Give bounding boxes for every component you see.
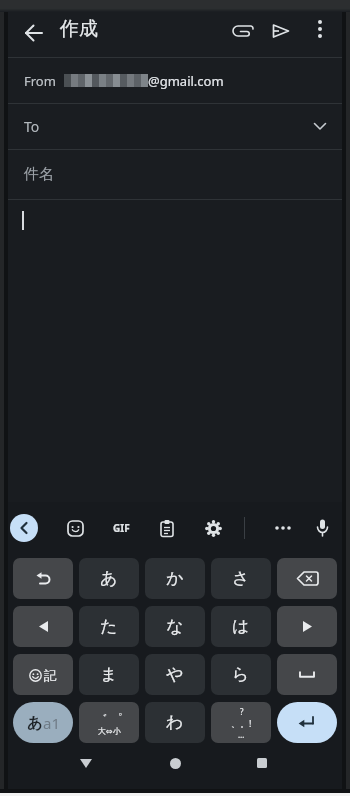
button[interactable]: [277, 702, 337, 743]
staticText: 作成: [60, 17, 98, 41]
staticText: ?: [240, 706, 244, 717]
staticText: @gmail.com: [148, 72, 224, 90]
button[interactable]: わ: [145, 702, 205, 743]
button[interactable]: [10, 514, 38, 542]
staticText: わ: [166, 712, 184, 733]
button[interactable]: [306, 15, 334, 43]
button[interactable]: [61, 514, 89, 542]
button[interactable]: さ: [211, 558, 271, 599]
staticText: さ: [232, 568, 250, 589]
staticText: あ: [100, 568, 118, 589]
staticText: 件名: [24, 165, 54, 184]
button[interactable]: は: [211, 606, 271, 647]
button[interactable]: [199, 514, 227, 542]
button[interactable]: た: [79, 606, 139, 647]
staticText: た: [100, 616, 118, 637]
button[interactable]: 件名: [8, 150, 342, 199]
button[interactable]: [16, 15, 52, 51]
staticText: や: [166, 664, 184, 685]
button[interactable]: [13, 558, 73, 599]
staticText: From: [24, 72, 56, 90]
staticText: GIF: [113, 521, 130, 535]
staticText: …: [238, 729, 245, 740]
button[interactable]: あ: [13, 702, 73, 743]
button[interactable]: [227, 15, 259, 47]
button[interactable]: ま: [79, 654, 139, 695]
button[interactable]: か: [145, 558, 205, 599]
staticText: あ: [27, 714, 43, 733]
staticText: ま: [100, 664, 118, 685]
staticText: 記: [44, 667, 57, 683]
button[interactable]: [277, 606, 337, 647]
staticText: 大⇔小: [98, 726, 121, 736]
button[interactable]: ゛ ゜: [79, 702, 139, 743]
staticText: a1: [43, 713, 60, 733]
button[interactable]: ら: [211, 654, 271, 695]
button[interactable]: From: [8, 58, 342, 103]
button[interactable]: [13, 606, 73, 647]
staticText: な: [166, 616, 184, 637]
button[interactable]: [269, 514, 297, 542]
staticText: は: [232, 616, 250, 637]
button[interactable]: [159, 747, 191, 779]
button[interactable]: [308, 514, 336, 542]
staticText: 、。!: [231, 717, 252, 729]
button[interactable]: GIF: [107, 514, 135, 542]
staticText: ら: [232, 664, 250, 685]
button[interactable]: [8, 200, 342, 502]
button[interactable]: や: [145, 654, 205, 695]
button[interactable]: な: [145, 606, 205, 647]
button[interactable]: [246, 747, 278, 779]
button[interactable]: [153, 514, 181, 542]
button[interactable]: [70, 747, 102, 779]
button[interactable]: ?: [211, 702, 271, 743]
button[interactable]: あ: [79, 558, 139, 599]
button[interactable]: To: [8, 104, 342, 149]
button[interactable]: [265, 15, 297, 47]
staticText: To: [24, 117, 40, 136]
button[interactable]: [277, 654, 337, 695]
button[interactable]: 記: [13, 654, 73, 695]
button[interactable]: [277, 558, 337, 599]
staticText: ゛ ゜: [95, 710, 123, 726]
staticText: か: [166, 568, 184, 589]
